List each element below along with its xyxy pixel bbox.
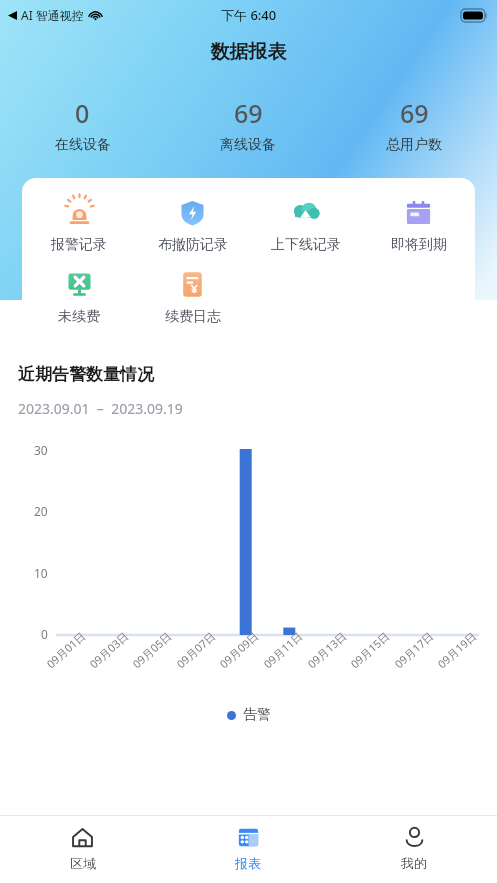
staticText: 10: [34, 565, 48, 581]
button[interactable]: 布撤防记录: [136, 190, 249, 262]
staticText: 未续费: [58, 308, 100, 326]
staticText: 0: [41, 626, 48, 642]
staticText: 2023.09.01 – 2023.09.19: [18, 399, 183, 418]
staticText: 09月09日: [216, 628, 262, 671]
staticText: 近期告警数量情况: [18, 364, 154, 385]
button[interactable]: 区域: [0, 816, 165, 883]
staticText: 报警记录: [51, 236, 107, 254]
button[interactable]: 续费日志: [136, 262, 249, 334]
staticText: 布撤防记录: [158, 236, 228, 254]
button[interactable]: 报警记录: [22, 190, 136, 262]
button[interactable]: 0: [0, 96, 165, 154]
staticText: 0: [75, 96, 90, 130]
staticText: 09月17日: [391, 628, 437, 671]
staticText: 报表: [235, 855, 261, 871]
staticText: 总用户数: [386, 136, 442, 154]
button[interactable]: 69: [165, 96, 331, 154]
staticText: 数据报表: [0, 40, 497, 64]
staticText: 09月19日: [434, 628, 480, 671]
staticText: 09月05日: [129, 628, 175, 671]
button[interactable]: 69: [331, 96, 497, 154]
staticText: 区域: [70, 855, 96, 871]
button[interactable]: 我的: [331, 816, 497, 883]
staticText: 上下线记录: [271, 236, 341, 254]
button[interactable]: 未续费: [22, 262, 136, 334]
staticText: 30: [34, 442, 48, 458]
staticText: 09月11日: [260, 628, 306, 671]
staticText: 09月01日: [43, 628, 89, 671]
staticText: 20: [34, 503, 48, 519]
staticText: 我的: [401, 855, 427, 871]
staticText: 即将到期: [391, 236, 447, 254]
staticText: 下午 6:40: [221, 6, 277, 24]
staticText: 在线设备: [55, 136, 111, 154]
button[interactable]: 报表: [165, 816, 331, 883]
staticText: 离线设备: [220, 136, 276, 154]
button[interactable]: 上下线记录: [249, 190, 362, 262]
staticText: 09月13日: [304, 628, 350, 671]
staticText: 告警: [243, 706, 271, 724]
staticText: 09月15日: [347, 628, 393, 671]
staticText: AI 智通视控: [21, 7, 84, 23]
staticText: 69: [234, 96, 263, 130]
staticText: 续费日志: [165, 308, 221, 326]
staticText: 09月03日: [86, 628, 132, 671]
staticText: 09月07日: [173, 628, 219, 671]
button[interactable]: 即将到期: [362, 190, 475, 262]
staticText: 69: [400, 96, 429, 130]
